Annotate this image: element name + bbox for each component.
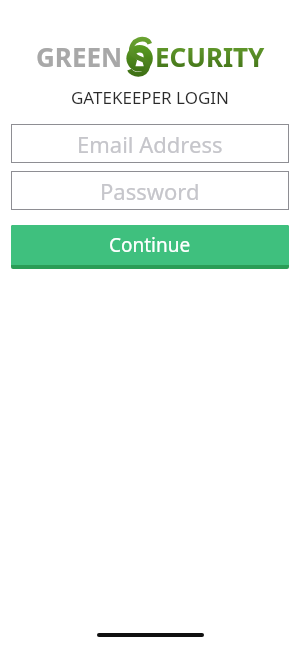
other: Home indicator	[97, 633, 204, 637]
staticText: Continue	[109, 232, 191, 258]
staticText: Password	[100, 176, 200, 206]
staticText: Email Address	[77, 129, 223, 159]
button[interactable]: Password	[11, 171, 289, 210]
button[interactable]: Email Address	[11, 124, 289, 163]
staticText: GREEN	[36, 39, 123, 74]
button[interactable]: Continue	[11, 225, 289, 269]
staticText: ECURITY	[155, 39, 265, 74]
staticText: GATEKEEPER LOGIN	[0, 86, 300, 109]
